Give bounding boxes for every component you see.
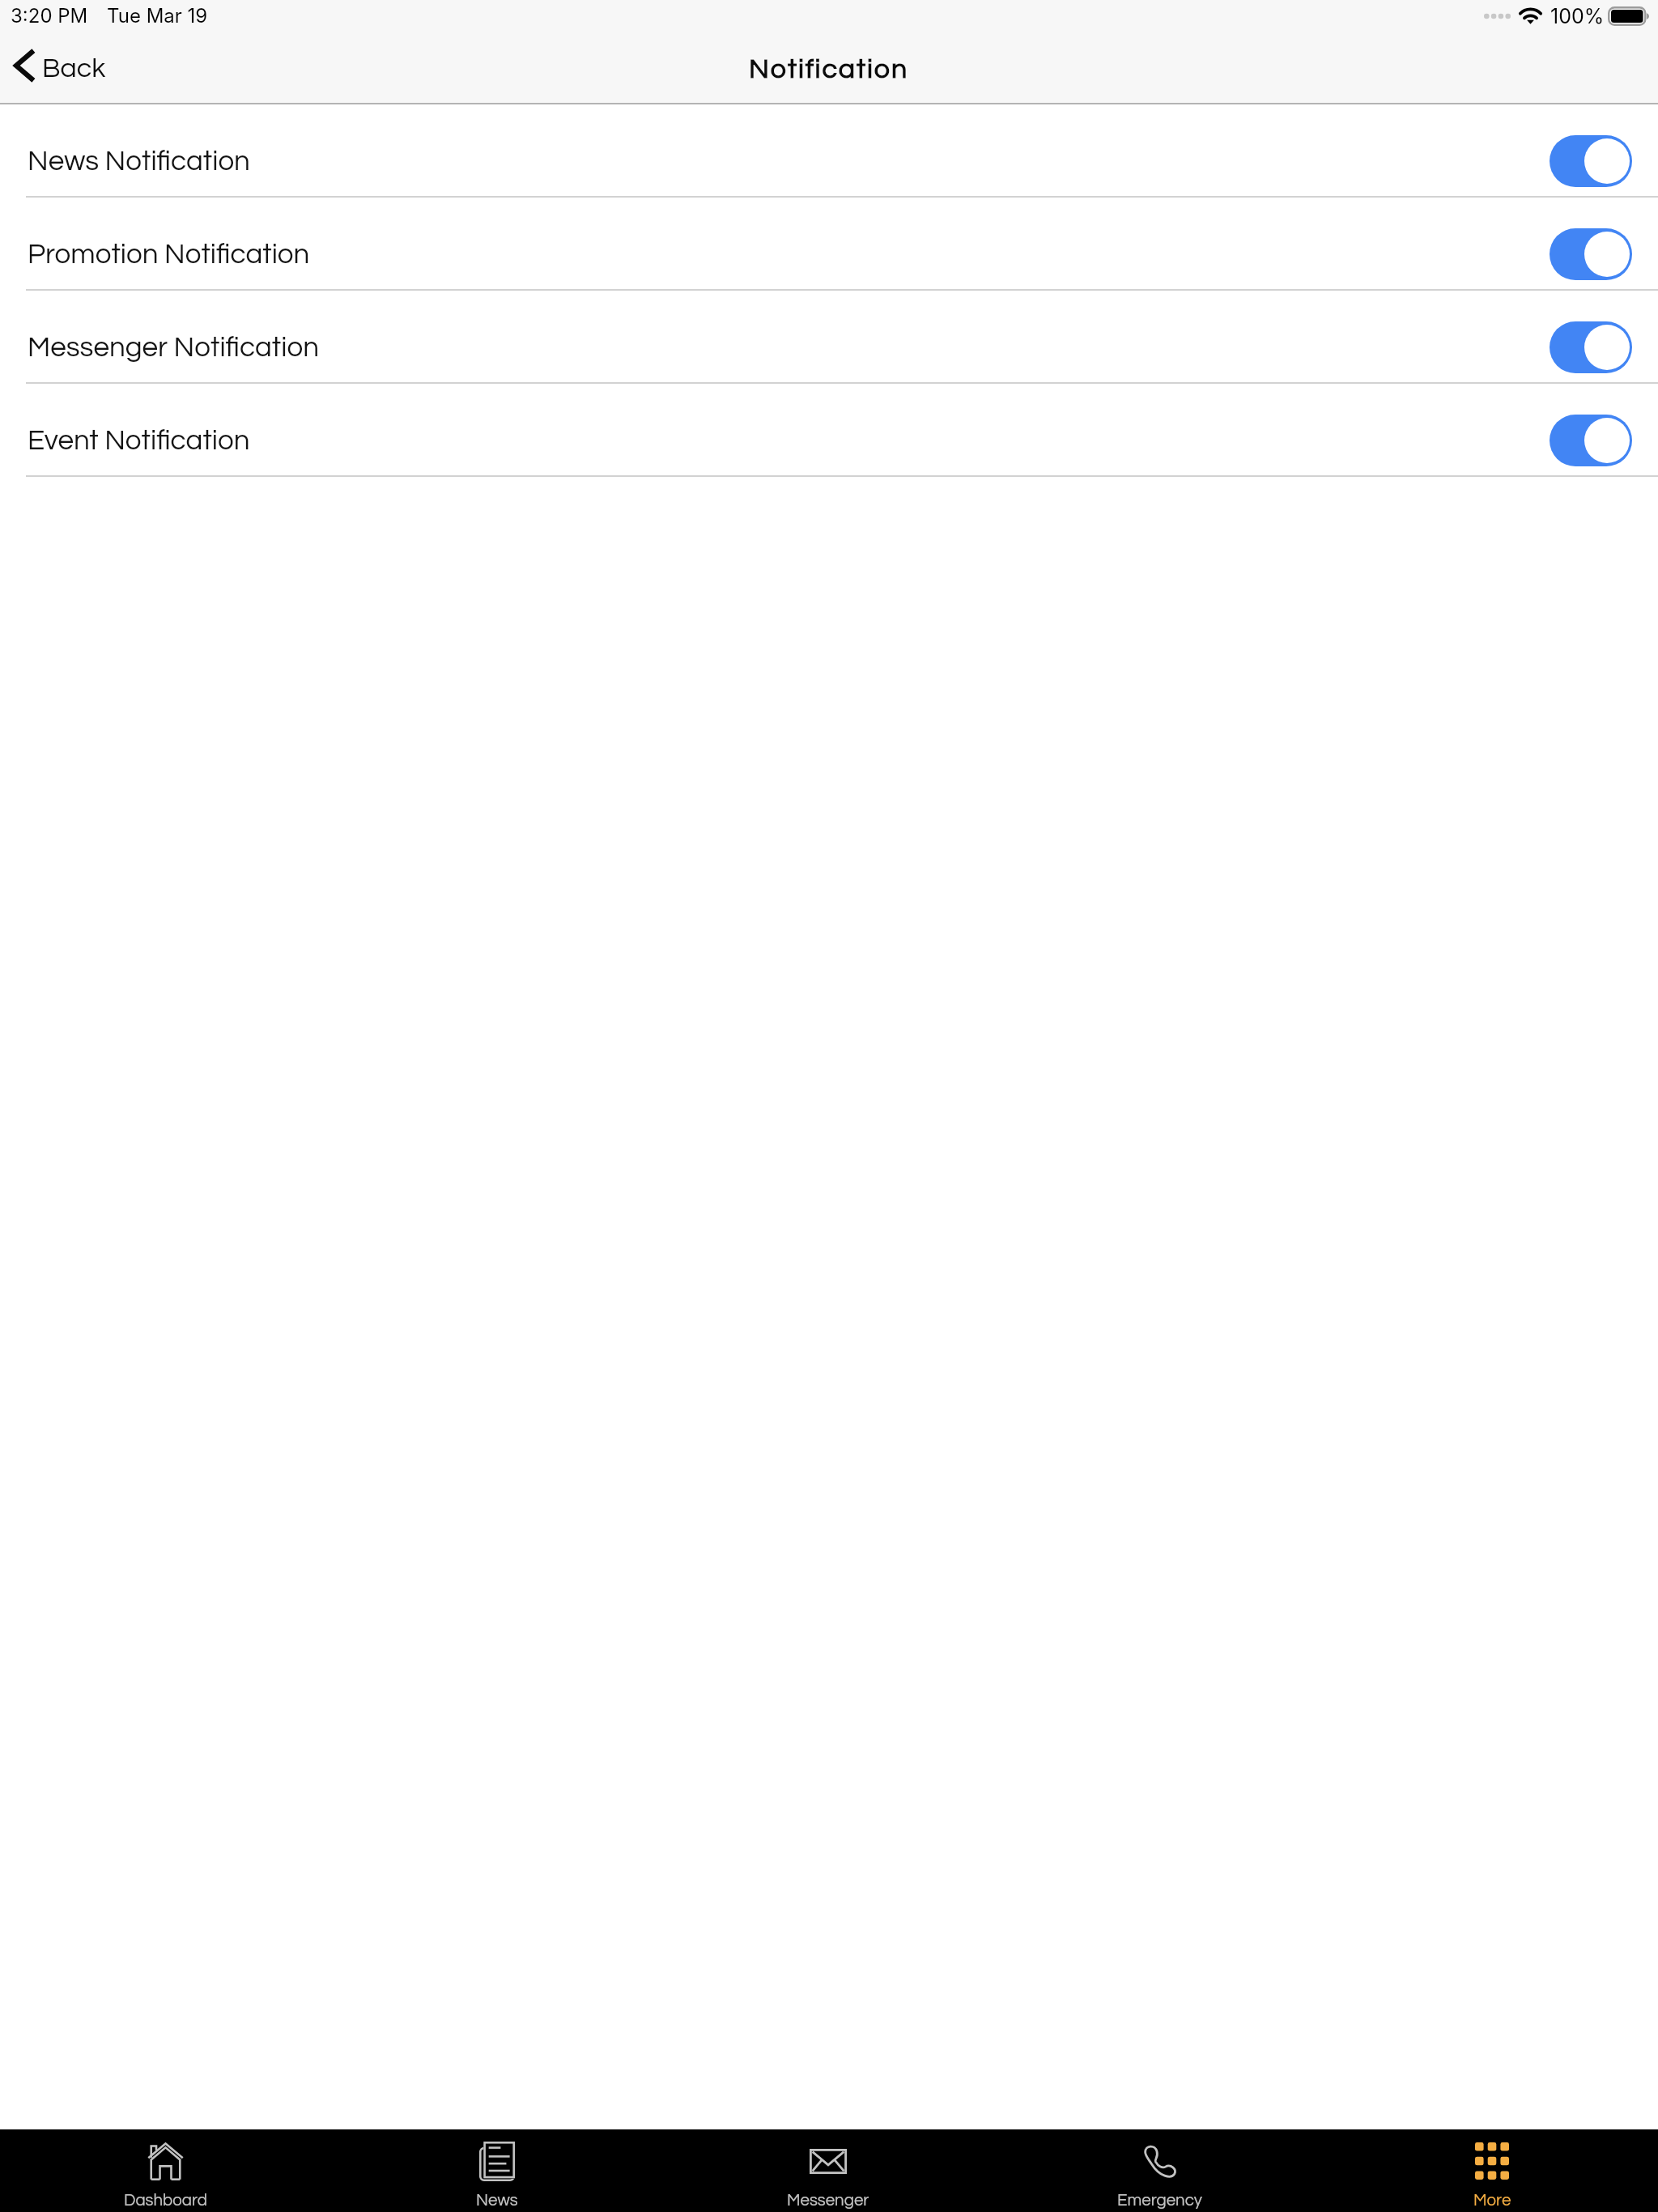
button[interactable]: Toggle on [1550, 135, 1632, 187]
button[interactable]: Event Notification [0, 384, 1658, 475]
staticText: More [1473, 2192, 1511, 2209]
staticText: Messenger [787, 2192, 869, 2209]
button[interactable]: Toggle on [1550, 415, 1632, 466]
button[interactable]: Dashboard [0, 2129, 331, 2212]
button[interactable]: Messenger [662, 2129, 994, 2212]
staticText: Back [42, 54, 106, 83]
staticText: News [476, 2192, 518, 2209]
staticText: Promotion Notification [28, 240, 310, 269]
staticText: 100% [1550, 4, 1605, 28]
staticText: Notification [749, 55, 909, 83]
staticText: Dashboard [124, 2192, 208, 2209]
other: Back [14, 49, 36, 83]
button[interactable]: Promotion Notification [0, 198, 1658, 289]
staticText: 3:20 PM [11, 4, 88, 28]
button[interactable]: News Notification [0, 104, 1658, 196]
button[interactable]: Toggle on [1550, 321, 1632, 373]
staticText: Emergency [1117, 2192, 1203, 2209]
button[interactable]: Emergency [994, 2129, 1326, 2212]
button[interactable]: More [1326, 2129, 1658, 2212]
button[interactable]: Messenger Notification [0, 291, 1658, 382]
button[interactable]: Back [0, 44, 124, 91]
button[interactable]: News [331, 2129, 662, 2212]
staticText: Event Notification [28, 426, 250, 455]
button[interactable]: Toggle on [1550, 228, 1632, 280]
staticText: News Notification [28, 147, 250, 176]
staticText: Messenger Notification [28, 333, 319, 362]
staticText: Tue Mar 19 [107, 4, 208, 28]
